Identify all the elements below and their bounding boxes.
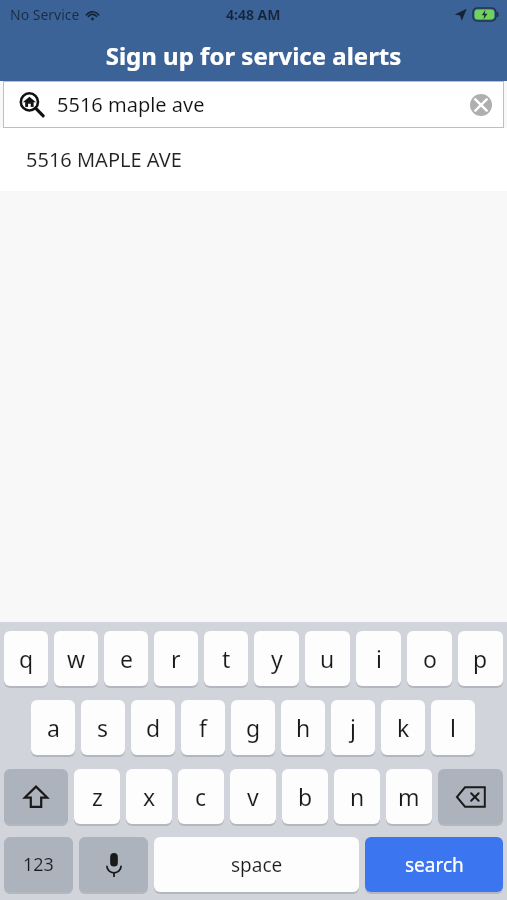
staticText: 5516 maple ave	[57, 91, 205, 118]
button[interactable]: f	[181, 700, 225, 757]
button[interactable]: q	[4, 631, 48, 688]
staticText: 5516 MAPLE AVE	[26, 146, 182, 173]
button[interactable]: Shift	[4, 769, 68, 826]
staticText: 123	[23, 852, 54, 877]
staticText: d	[146, 712, 161, 743]
staticText: r	[171, 643, 181, 674]
button[interactable]: u	[305, 631, 350, 688]
button[interactable]: a	[31, 700, 75, 757]
staticText: x	[143, 781, 156, 812]
staticText: t	[222, 643, 231, 674]
staticText: u	[320, 643, 335, 674]
button[interactable]: 123	[4, 837, 73, 894]
button[interactable]: o	[407, 631, 452, 688]
button[interactable]: n	[334, 769, 380, 826]
button[interactable]: r	[154, 631, 198, 688]
button[interactable]: search	[365, 837, 503, 894]
staticText: s	[97, 712, 109, 743]
button[interactable]: e	[104, 631, 148, 688]
staticText: i	[376, 643, 382, 674]
button[interactable]: space	[154, 837, 359, 894]
button[interactable]: y	[254, 631, 299, 688]
staticText: Sign up for service alerts	[0, 39, 507, 72]
button[interactable]: Voice input	[79, 837, 148, 894]
staticText: o	[423, 643, 437, 674]
staticText: b	[298, 781, 313, 812]
button[interactable]: w	[54, 631, 98, 688]
button[interactable]: i	[356, 631, 401, 688]
button[interactable]: k	[381, 700, 425, 757]
staticText: j	[350, 712, 356, 743]
button[interactable]: 5516 MAPLE AVE	[0, 128, 507, 191]
staticText: space	[231, 852, 283, 878]
button[interactable]: h	[281, 700, 325, 757]
button[interactable]: s	[81, 700, 125, 757]
button[interactable]: Backspace	[438, 769, 503, 826]
staticText: l	[450, 712, 456, 743]
button[interactable]: g	[231, 700, 275, 757]
staticText: e	[120, 643, 133, 674]
staticText: n	[350, 781, 365, 812]
staticText: f	[199, 712, 207, 743]
button[interactable]: Clear text	[470, 94, 492, 116]
button[interactable]: v	[230, 769, 276, 826]
staticText: m	[398, 781, 420, 812]
button[interactable]: t	[204, 631, 248, 688]
button[interactable]: 5516 maple ave	[3, 81, 504, 128]
staticText: p	[473, 643, 488, 674]
button[interactable]: x	[126, 769, 172, 826]
button[interactable]: b	[282, 769, 328, 826]
staticText: g	[246, 712, 261, 743]
staticText: search	[405, 852, 464, 878]
staticText: k	[397, 712, 410, 743]
button[interactable]: z	[74, 769, 120, 826]
button[interactable]: j	[331, 700, 375, 757]
staticText: c	[195, 781, 207, 812]
staticText: q	[19, 643, 34, 674]
staticText: No Service	[10, 5, 80, 24]
button[interactable]: l	[431, 700, 475, 757]
button[interactable]: m	[386, 769, 432, 826]
staticText: z	[92, 781, 103, 812]
staticText: v	[247, 781, 259, 812]
staticText: w	[67, 643, 86, 674]
staticText: a	[47, 712, 60, 743]
staticText: h	[296, 712, 311, 743]
staticText: 4:48 AM	[226, 5, 281, 24]
button[interactable]: c	[178, 769, 224, 826]
button[interactable]: p	[458, 631, 503, 688]
button[interactable]: d	[131, 700, 175, 757]
staticText: y	[271, 643, 283, 674]
